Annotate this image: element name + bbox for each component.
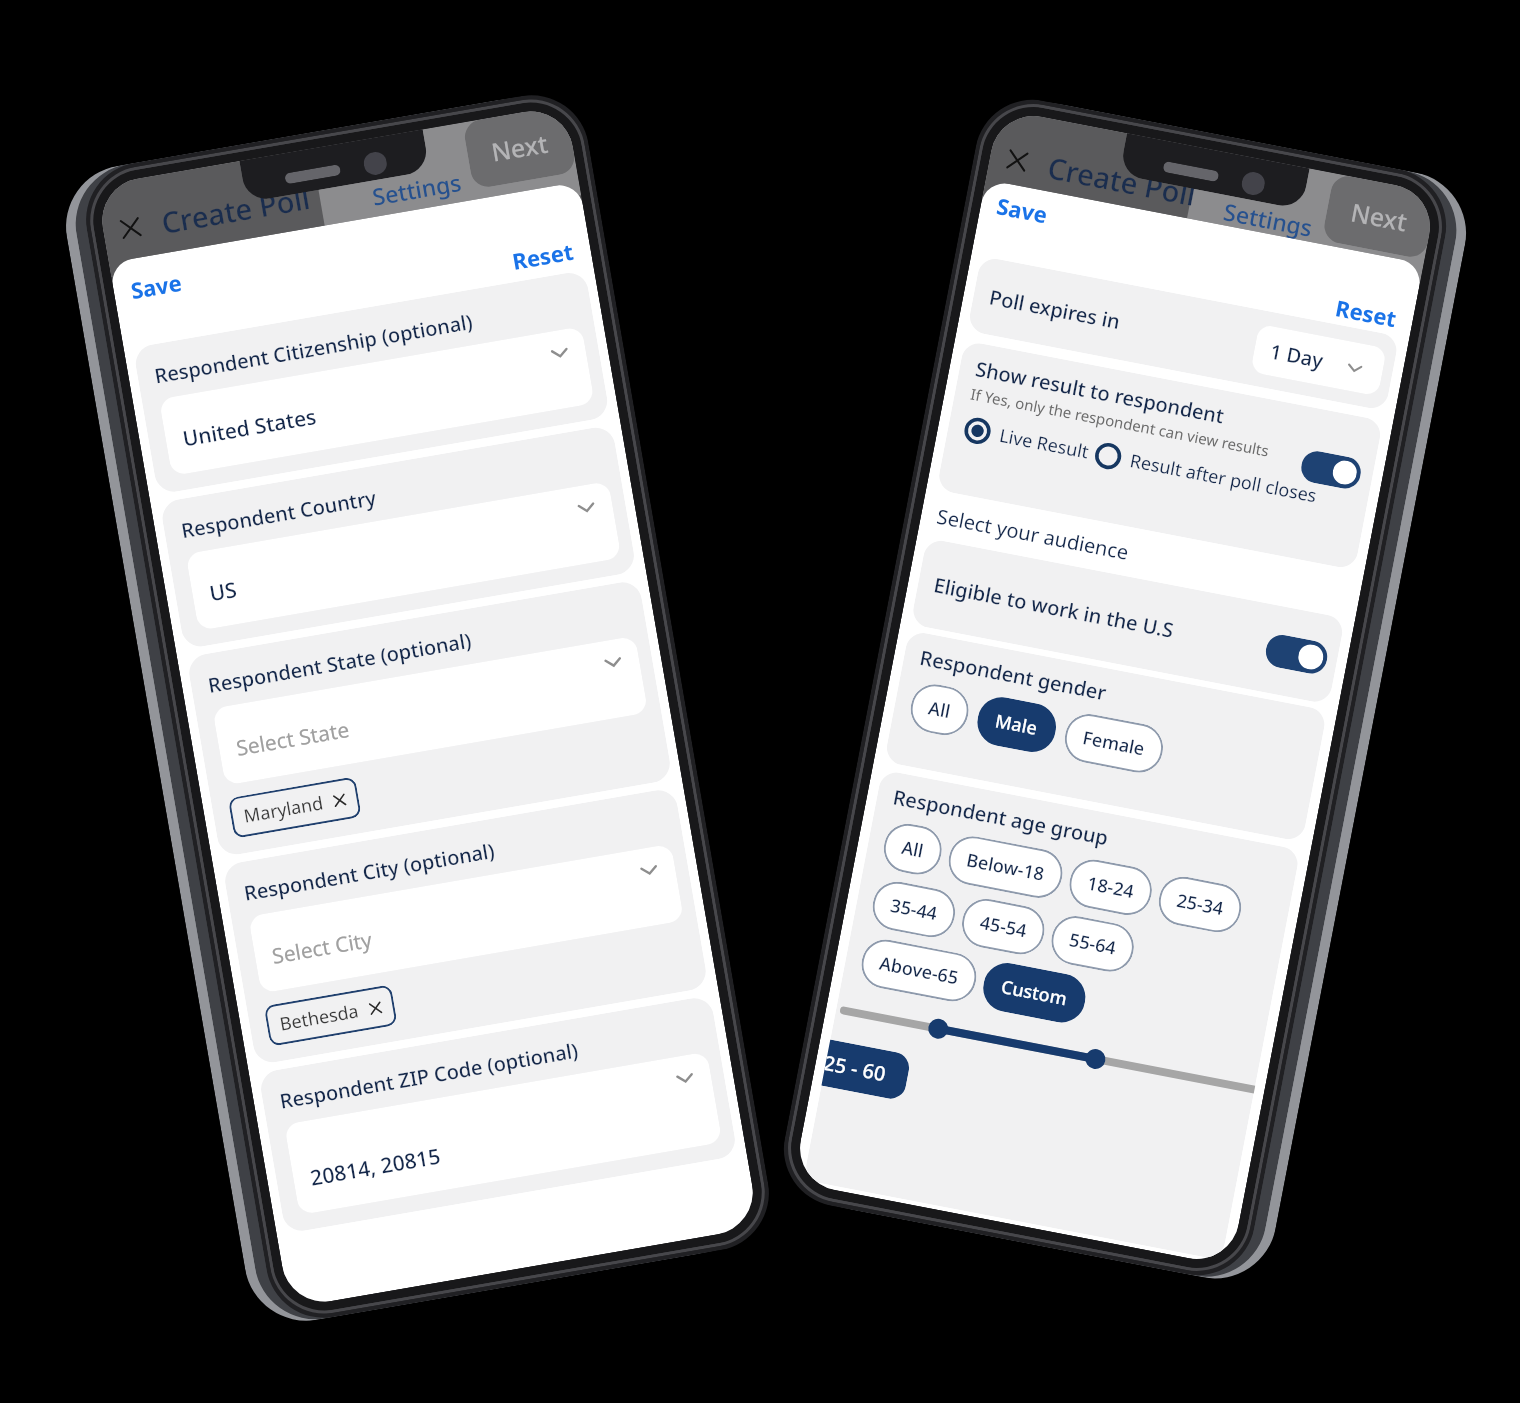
button[interactable]: Female: [1061, 710, 1167, 777]
button[interactable]: US: [185, 481, 621, 631]
staticText: Create Poll: [1045, 147, 1199, 214]
staticText: Live Result: [997, 423, 1091, 465]
button[interactable]: 1 Day: [1250, 324, 1387, 396]
button[interactable]: Above-65: [857, 935, 981, 1006]
staticText: Respondent gender: [918, 644, 1109, 706]
button[interactable]: Next: [1321, 173, 1437, 260]
staticText: All: [926, 695, 953, 724]
button[interactable]: All: [906, 680, 973, 739]
staticText: Female: [1081, 725, 1147, 762]
staticText: Eligible to work in the U.S: [932, 571, 1176, 644]
button[interactable]: 55-64: [1047, 912, 1138, 976]
staticText: 1 Day: [1268, 338, 1326, 374]
button[interactable]: 25 - 60: [821, 1039, 912, 1101]
staticText: Select your audience: [935, 502, 1131, 566]
staticText: All: [900, 835, 926, 863]
staticText: Custom: [999, 974, 1070, 1011]
button[interactable]: Male: [973, 693, 1060, 756]
button[interactable]: All: [880, 820, 946, 879]
staticText: Respondent Citizenship (optional): [152, 308, 475, 389]
staticText: United States: [180, 402, 318, 454]
button[interactable]: Toggle: [1263, 632, 1330, 676]
staticText: Next: [489, 126, 551, 169]
staticText: 55-64: [1067, 927, 1118, 961]
staticText: Respondent City (optional): [242, 837, 497, 907]
button[interactable]: Respondent gender: [884, 630, 1327, 842]
staticText: 25-34: [1175, 888, 1225, 921]
button[interactable]: Poll expires in: [967, 256, 1399, 411]
staticText: 45-54: [978, 910, 1029, 943]
button[interactable]: Bethesda: [264, 984, 398, 1047]
staticText: US: [207, 575, 240, 608]
staticText: Poll expires in: [987, 283, 1123, 335]
staticText: Male: [993, 708, 1040, 741]
button[interactable]: United States: [159, 326, 595, 476]
staticText: Select City: [270, 925, 374, 971]
button[interactable]: Respondent Citizenship (optional): [133, 270, 610, 495]
staticText: 20814, 20815: [308, 1141, 443, 1192]
staticText: 25 - 60: [823, 1049, 888, 1087]
staticText: Respondent ZIP Code (optional): [278, 1037, 580, 1115]
staticText: 18-24: [1085, 871, 1136, 904]
button[interactable]: Respondent Country: [159, 424, 637, 649]
staticText: Poll Settings: [365, 136, 464, 212]
button[interactable]: Toggle: [1299, 448, 1364, 491]
button[interactable]: Respondent age group: [803, 769, 1301, 1260]
staticText: Create Poll: [158, 178, 313, 242]
button[interactable]: Maryland: [228, 776, 362, 839]
button[interactable]: Select State: [212, 636, 648, 786]
button[interactable]: Custom: [979, 959, 1089, 1027]
button[interactable]: Reset: [510, 236, 576, 276]
button[interactable]: Show result to respondent: [936, 340, 1383, 570]
staticText: Maryland: [242, 790, 325, 829]
staticText: Respondent State (optional): [206, 627, 474, 699]
button[interactable]: Below-18: [944, 832, 1067, 902]
staticText: Bethesda: [278, 998, 361, 1037]
button[interactable]: 35-44: [868, 878, 959, 941]
button[interactable]: Respondent ZIP Code (optional): [258, 995, 738, 1234]
button[interactable]: Respondent State (optional): [186, 579, 673, 857]
button[interactable]: Reset: [1333, 292, 1400, 333]
staticText: If Yes, only the respondent can view res…: [969, 384, 1271, 461]
staticText: Show result to respondent: [973, 355, 1227, 430]
button[interactable]: Save: [994, 190, 1050, 229]
button[interactable]: Select City: [248, 844, 684, 993]
staticText: Poll Settings: [1221, 166, 1321, 243]
button[interactable]: Result after poll closes: [1092, 440, 1319, 509]
staticText: Result after poll closes: [1128, 448, 1319, 508]
button[interactable]: Save: [128, 267, 184, 305]
staticText: 35-44: [888, 893, 939, 926]
staticText: Respondent age group: [891, 783, 1111, 851]
button[interactable]: 18-24: [1065, 855, 1156, 919]
staticText: Above-65: [877, 951, 961, 990]
button[interactable]: 25-34: [1155, 873, 1245, 936]
button[interactable]: Live Result: [962, 415, 1091, 466]
staticText: Below-18: [964, 847, 1047, 887]
button[interactable]: Next: [462, 105, 577, 190]
button[interactable]: 20814, 20815: [284, 1051, 722, 1215]
staticText: Select State: [234, 715, 352, 763]
button[interactable]: 45-54: [958, 895, 1049, 959]
button[interactable]: Eligible to work in the U.S: [910, 538, 1345, 705]
button[interactable]: Respondent City (optional): [222, 787, 709, 1065]
staticText: Respondent Country: [179, 484, 378, 544]
staticText: Next: [1348, 194, 1410, 239]
